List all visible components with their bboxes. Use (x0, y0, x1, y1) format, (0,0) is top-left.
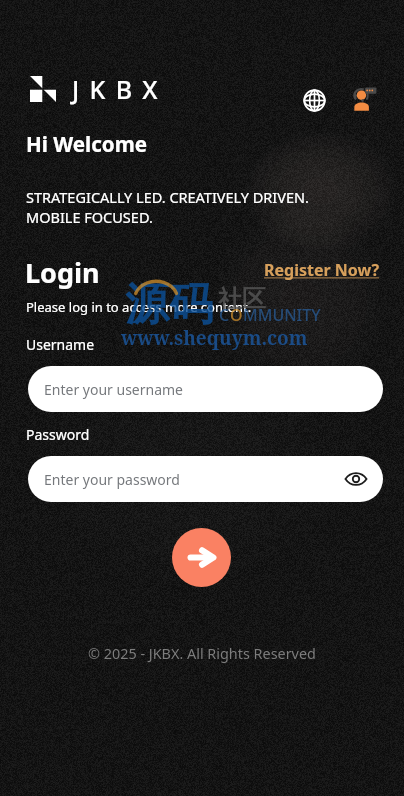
button[interactable]: Submit login (172, 528, 231, 587)
button[interactable]: Enter your password (28, 456, 383, 502)
staticText: Username (26, 335, 95, 354)
button[interactable]: Support chat (349, 85, 378, 114)
button[interactable]: Enter your username (28, 366, 383, 412)
staticText: © 2025 - JKBX. All Rights Reserved (88, 644, 316, 664)
button[interactable]: JKBX home (30, 72, 160, 106)
staticText: Password (26, 425, 90, 444)
staticText: Enter your password (44, 470, 180, 489)
staticText: Register Now? (264, 259, 380, 281)
staticText: Please log in to access more content. (26, 298, 252, 316)
button[interactable]: Language (300, 86, 329, 115)
staticText: MMUNITY (243, 304, 321, 326)
staticText: Hi Welcome (26, 130, 148, 158)
staticText: J K B X (72, 72, 160, 106)
staticText: STRATEGICALLY LED. CREATIVELY DRIVEN. MO… (26, 187, 309, 227)
button[interactable]: Show password (343, 466, 369, 492)
button[interactable]: Register Now? (262, 257, 382, 283)
staticText: Login (25, 254, 100, 291)
staticText: 源码 (125, 277, 213, 332)
staticText: 社区 (218, 284, 266, 314)
staticText: O (230, 304, 243, 326)
staticText: Enter your username (44, 380, 184, 399)
staticText: www.shequym.com (121, 325, 308, 351)
staticText: C (219, 304, 230, 326)
